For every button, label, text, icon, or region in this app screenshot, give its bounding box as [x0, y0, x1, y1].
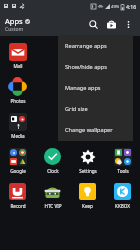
staticText: Photos: [10, 98, 26, 104]
staticText: Clock: [47, 168, 59, 174]
staticText: KKBOX: [115, 203, 130, 209]
button[interactable]: Search: [84, 15, 102, 33]
staticText: Grid size: [65, 105, 88, 113]
button[interactable]: Rearrange apps: [58, 35, 133, 56]
staticText: Rearrange apps: [65, 42, 107, 50]
staticText: Tools: [117, 168, 129, 174]
staticText: Manage apps: [65, 84, 101, 92]
staticText: Keep: [82, 203, 93, 209]
button[interactable]: Show/hide apps: [58, 56, 133, 77]
button[interactable]: HTC VIP: [35, 178, 70, 213]
staticText: Change wallpaper: [65, 126, 113, 134]
staticText: 49%: [111, 4, 120, 10]
button[interactable]: Media: [0, 108, 35, 143]
button[interactable]: Keep: [70, 178, 105, 213]
button[interactable]: More options: [120, 16, 136, 32]
button[interactable]: Play Store: [102, 15, 120, 33]
staticText: Record: [10, 203, 26, 209]
button[interactable]: Google: [0, 143, 35, 178]
staticText: Media: [11, 133, 25, 139]
staticText: Google: [10, 168, 26, 174]
button[interactable]: Mail: [0, 38, 35, 73]
staticText: Settings: [79, 168, 97, 174]
staticText: HTC VIP: [44, 203, 62, 209]
button[interactable]: Change wallpaper: [58, 119, 133, 140]
staticText: Mail: [13, 63, 23, 69]
staticText: Apps: [5, 16, 23, 26]
button[interactable]: Clock: [35, 143, 70, 178]
button[interactable]: Settings: [70, 143, 105, 178]
staticText: Show/hide apps: [65, 63, 107, 71]
button[interactable]: Manage apps: [58, 77, 133, 98]
button[interactable]: Record: [0, 178, 35, 213]
button[interactable]: Photos: [0, 73, 35, 108]
button[interactable]: KKBOX: [105, 178, 140, 213]
button[interactable]: Tools: [105, 143, 140, 178]
button[interactable]: Grid size: [58, 98, 133, 119]
staticText: Custom: [5, 26, 24, 33]
staticText: 4:16: [126, 3, 137, 10]
